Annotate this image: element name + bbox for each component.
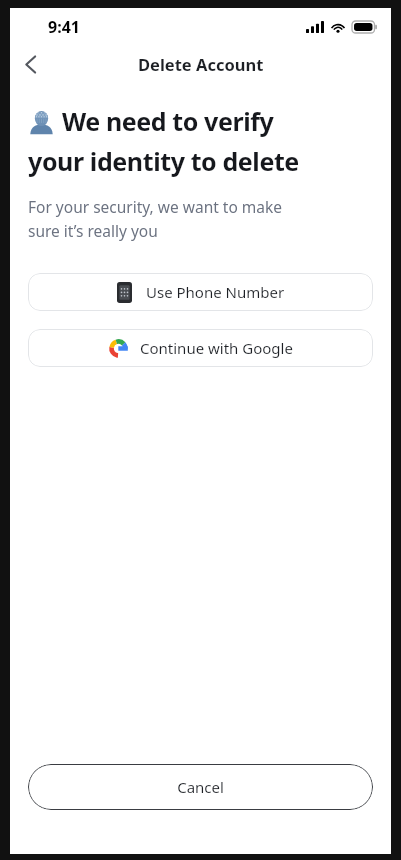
staticText: your identity to delete — [28, 144, 299, 178]
staticText: We need to verify — [62, 104, 274, 138]
button[interactable]: Continue with Google — [28, 329, 373, 367]
staticText: 9:41 — [48, 16, 80, 38]
button[interactable]: Use Phone Number — [28, 273, 373, 311]
staticText: Continue with Google — [140, 338, 293, 358]
staticText: Cancel — [177, 777, 224, 797]
staticText: Delete Account — [138, 53, 264, 75]
button[interactable]: Cancel — [28, 764, 373, 810]
button[interactable]: Back — [10, 46, 50, 82]
staticText: For your security, we want to make sure … — [28, 196, 283, 241]
staticText: Use Phone Number — [146, 282, 285, 302]
